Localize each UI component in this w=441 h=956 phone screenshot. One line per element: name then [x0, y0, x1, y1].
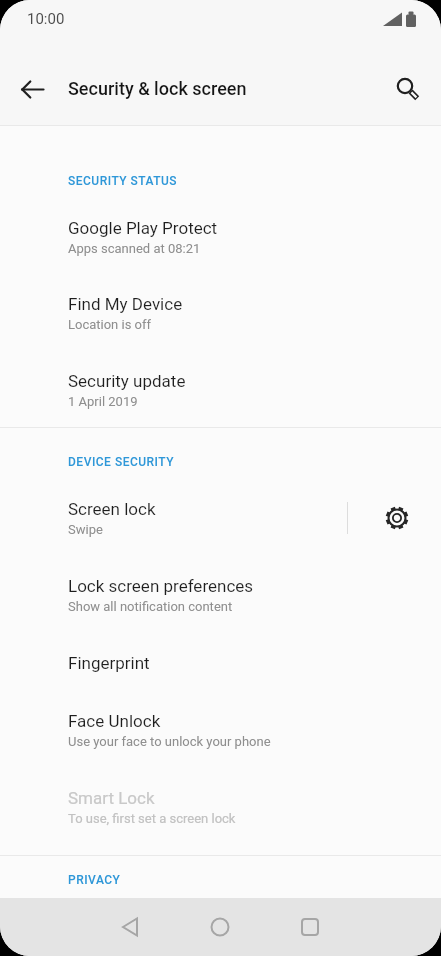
button[interactable]: Screen lock: [0, 481, 441, 557]
staticText: Smart Lock: [68, 788, 155, 808]
staticText: Screen lock: [68, 499, 156, 519]
staticText: Swipe: [68, 522, 103, 537]
staticText: 10:00: [27, 10, 65, 28]
staticText: Location is off: [68, 317, 152, 332]
button[interactable]: Lock screen preferences: [0, 558, 441, 634]
staticText: Apps scanned at 08:21: [68, 241, 201, 256]
staticText: PRIVACY: [68, 873, 121, 887]
button[interactable]: [375, 496, 419, 540]
button[interactable]: [198, 905, 242, 949]
button[interactable]: [10, 68, 54, 112]
button[interactable]: Find My Device: [0, 276, 441, 352]
staticText: 1 April 2019: [68, 394, 138, 409]
button[interactable]: Fingerprint: [0, 634, 441, 692]
staticText: Google Play Protect: [68, 218, 218, 238]
staticText: Show all notification content: [68, 599, 233, 614]
button[interactable]: [386, 68, 430, 112]
button[interactable]: [288, 905, 332, 949]
button[interactable]: Face Unlock: [0, 693, 441, 769]
staticText: To use, first set a screen lock: [68, 811, 236, 826]
staticText: Face Unlock: [68, 711, 161, 731]
button[interactable]: Google Play Protect: [0, 200, 441, 276]
staticText: Lock screen preferences: [68, 576, 254, 596]
staticText: Fingerprint: [68, 653, 150, 673]
button[interactable]: [108, 905, 152, 949]
staticText: Find My Device: [68, 294, 183, 314]
button[interactable]: Security update: [0, 353, 441, 429]
staticText: DEVICE SECURITY: [68, 455, 174, 469]
staticText: Security & lock screen: [68, 78, 247, 99]
button[interactable]: Smart Lock: [0, 770, 441, 846]
staticText: SECURITY STATUS: [68, 174, 178, 188]
staticText: Use your face to unlock your phone: [68, 734, 271, 749]
staticText: Security update: [68, 371, 186, 391]
